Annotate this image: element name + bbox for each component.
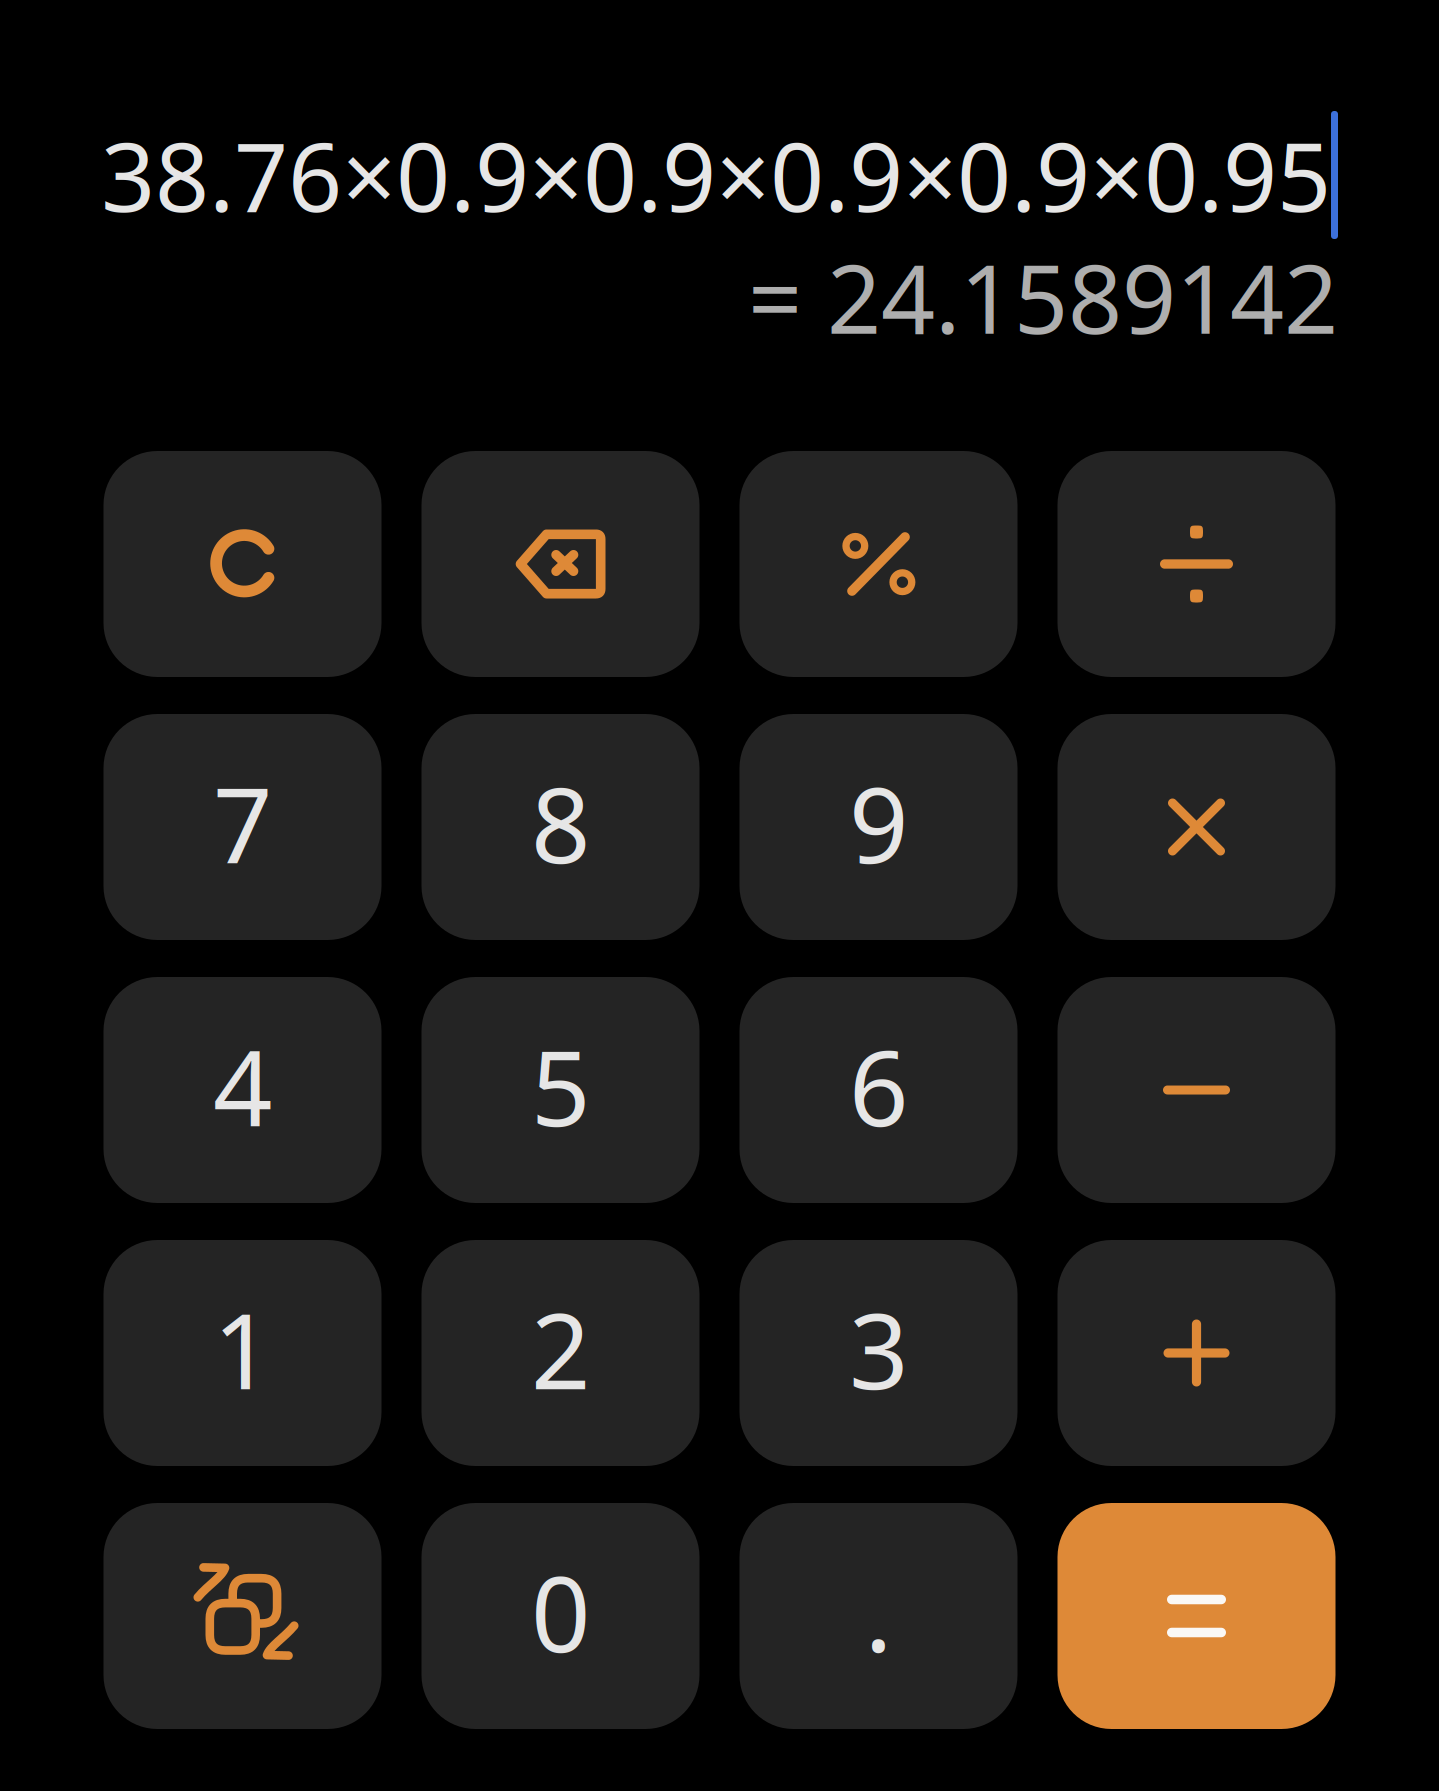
button[interactable]: 5 — [421, 977, 699, 1203]
button[interactable]: 0 — [421, 1503, 699, 1729]
staticText: 8 — [531, 754, 590, 892]
button[interactable]: Multiply — [1057, 714, 1335, 940]
button[interactable]: Backspace — [421, 451, 699, 677]
button[interactable]: Percent — [739, 451, 1017, 677]
button[interactable]: 7 — [103, 714, 381, 940]
staticText: 0 — [531, 1543, 590, 1681]
staticText: 2 — [531, 1280, 590, 1418]
button[interactable]: 8 — [421, 714, 699, 940]
button[interactable]: 4 — [103, 977, 381, 1203]
staticText: 7 — [213, 754, 272, 892]
button[interactable]: Divide — [1057, 451, 1335, 677]
staticText: 9 — [849, 754, 908, 892]
button[interactable]: 9 — [739, 714, 1017, 940]
staticText: 3 — [849, 1280, 908, 1418]
button[interactable]: Convert units — [103, 1503, 381, 1729]
staticText: 5 — [531, 1017, 590, 1155]
button[interactable]: Equals — [1057, 1503, 1335, 1729]
staticText: 1 — [213, 1280, 272, 1418]
button[interactable]: 2 — [421, 1240, 699, 1466]
button[interactable]: 3 — [739, 1240, 1017, 1466]
button[interactable]: Clear — [103, 451, 381, 677]
button[interactable]: 1 — [103, 1240, 381, 1466]
staticText: 6 — [849, 1017, 908, 1155]
staticText: . — [864, 1543, 892, 1681]
staticText: 38.76×0.9×0.9×0.9×0.9×0.95 — [101, 112, 1331, 238]
button[interactable]: Decimal point — [739, 1503, 1017, 1729]
button[interactable]: Subtract — [1057, 977, 1335, 1203]
staticText: 4 — [213, 1017, 272, 1155]
button[interactable]: Add — [1057, 1240, 1335, 1466]
staticText: = 24.1589142 — [748, 234, 1338, 360]
button[interactable]: 6 — [739, 977, 1017, 1203]
